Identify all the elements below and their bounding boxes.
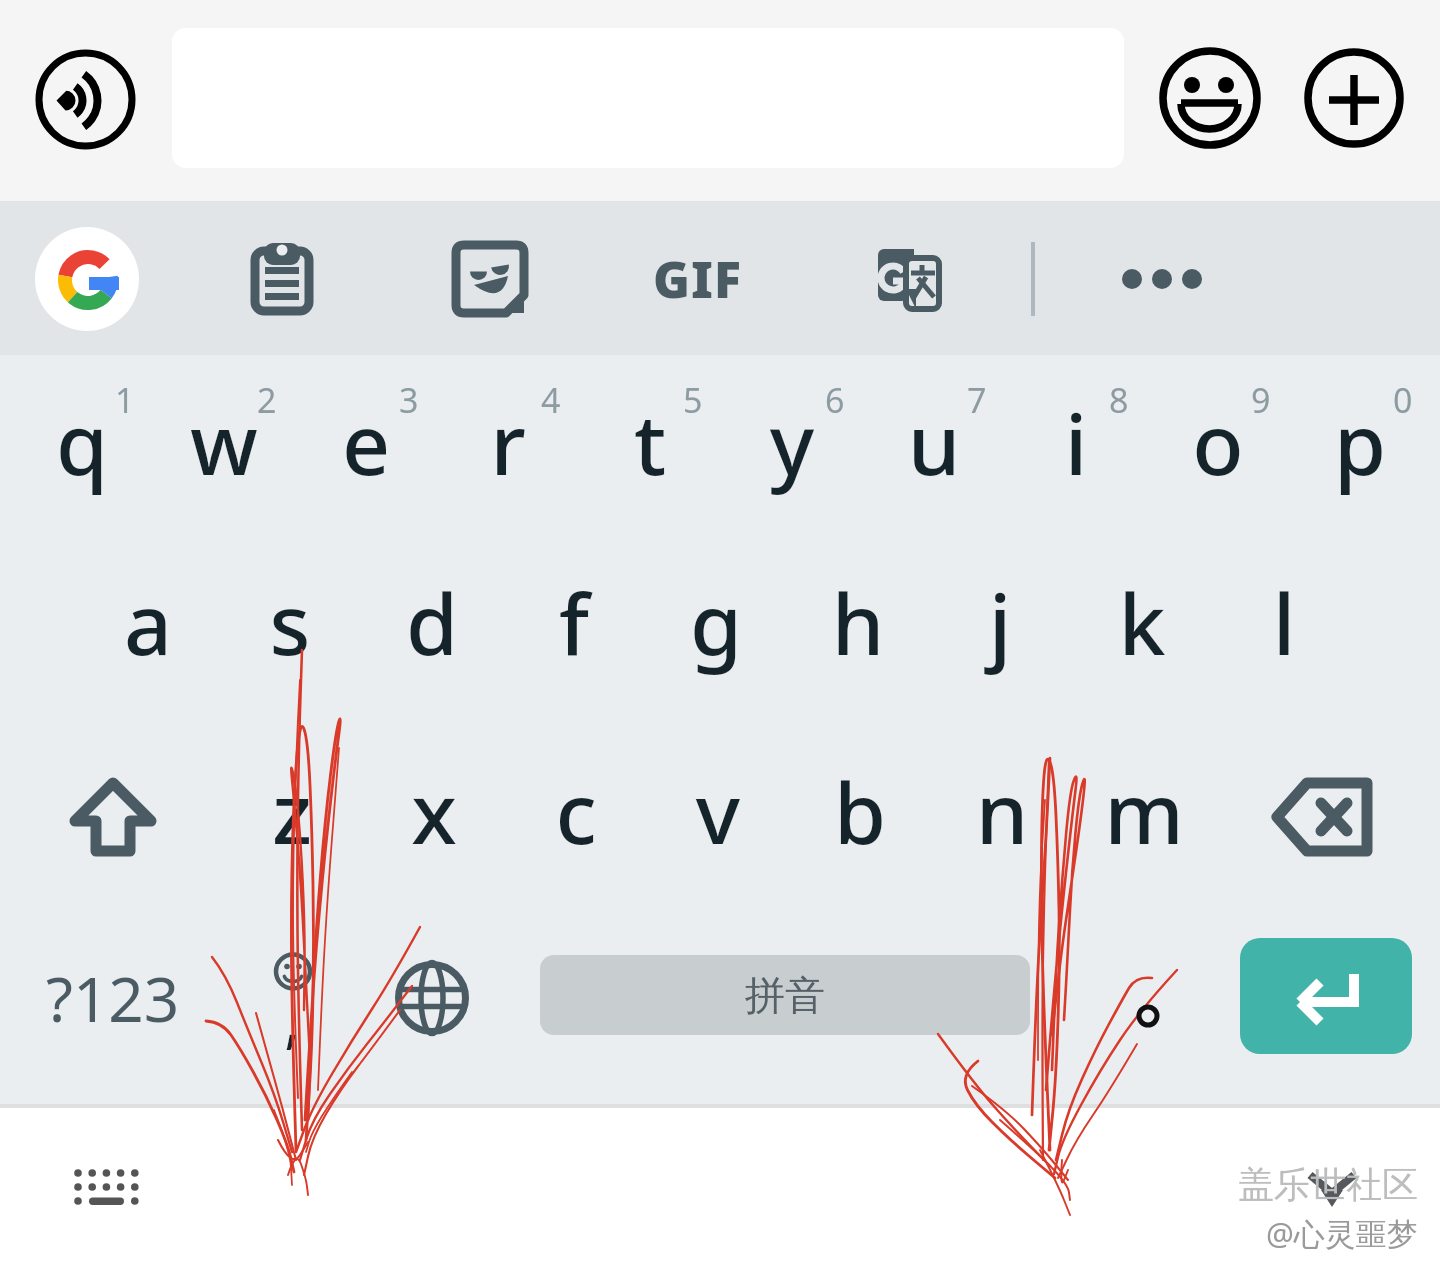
staticText: GIF <box>653 245 742 313</box>
staticText: p <box>1289 385 1431 499</box>
button[interactable]: o <box>1147 355 1289 541</box>
button[interactable]: Switch language <box>362 935 502 1060</box>
staticText: w <box>153 385 295 499</box>
button[interactable]: Emoji <box>1160 48 1260 148</box>
staticText: x <box>363 754 505 868</box>
button[interactable]: p <box>1289 355 1431 541</box>
button[interactable]: Voice input <box>34 48 137 151</box>
button[interactable]: Hide keyboard <box>62 1158 148 1206</box>
staticText: 0 <box>1393 377 1413 423</box>
button[interactable]: Translate <box>858 227 962 331</box>
staticText: c <box>505 754 647 868</box>
button[interactable]: Comma <box>222 935 362 1060</box>
staticText: 2 <box>257 377 277 423</box>
staticText: , <box>284 976 301 1060</box>
staticText: i <box>1005 385 1147 499</box>
button[interactable]: x <box>363 724 505 910</box>
staticText: e <box>295 385 437 499</box>
staticText: 5 <box>683 377 703 423</box>
button[interactable]: ?123 <box>28 935 198 1060</box>
button[interactable]: i <box>1005 355 1147 541</box>
button[interactable]: s <box>219 535 361 721</box>
button[interactable]: m <box>1073 724 1215 910</box>
staticText: h <box>787 565 929 679</box>
staticText: u <box>863 385 1005 499</box>
button[interactable]: Shift <box>40 752 186 882</box>
button[interactable]: u <box>863 355 1005 541</box>
staticText: d <box>361 565 503 679</box>
button[interactable]: q <box>11 355 153 541</box>
staticText: 6 <box>825 377 845 423</box>
button[interactable]: d <box>361 535 503 721</box>
staticText: ?123 <box>46 956 180 1040</box>
button[interactable]: w <box>153 355 295 541</box>
staticText: t <box>579 385 721 499</box>
button[interactable]: n <box>931 724 1073 910</box>
staticText: z <box>221 754 363 868</box>
button[interactable]: Sticker <box>438 227 542 331</box>
button[interactable]: 拼音 <box>540 955 1030 1035</box>
staticText: o <box>1147 385 1289 499</box>
button[interactable]: g <box>645 535 787 721</box>
staticText: q <box>11 385 153 499</box>
staticText: 盖乐世社区 <box>1238 1162 1418 1207</box>
staticText: @心灵噩梦 <box>1266 1212 1418 1254</box>
staticText: 3 <box>399 377 419 423</box>
staticText: 拼音 <box>745 970 825 1020</box>
button[interactable]: f <box>503 535 645 721</box>
button[interactable]: GIF <box>645 227 749 331</box>
staticText: 8 <box>1109 377 1129 423</box>
staticText: m <box>1073 754 1215 868</box>
staticText: k <box>1071 565 1213 679</box>
button[interactable]: Add <box>1304 48 1404 148</box>
button[interactable]: h <box>787 535 929 721</box>
button[interactable]: t <box>579 355 721 541</box>
button[interactable]: Backspace <box>1252 752 1398 882</box>
staticText: 1 <box>115 377 135 423</box>
button[interactable]: c <box>505 724 647 910</box>
button[interactable]: k <box>1071 535 1213 721</box>
staticText: b <box>789 754 931 868</box>
staticText: 9 <box>1251 377 1271 423</box>
button[interactable]: Google <box>35 227 139 331</box>
staticText: 7 <box>967 377 987 423</box>
button[interactable]: r <box>437 355 579 541</box>
staticText: j <box>929 565 1071 679</box>
button[interactable]: z <box>221 724 363 910</box>
staticText: a <box>77 565 219 679</box>
staticText: l <box>1213 565 1355 679</box>
button[interactable]: l <box>1213 535 1355 721</box>
staticText: 4 <box>541 377 561 423</box>
button[interactable]: b <box>789 724 931 910</box>
button[interactable]: More options <box>1110 227 1214 331</box>
button[interactable]: Clipboard <box>230 227 334 331</box>
staticText: y <box>721 385 863 499</box>
button[interactable]: Enter <box>1240 938 1412 1054</box>
button[interactable]: j <box>929 535 1071 721</box>
staticText: g <box>645 565 787 679</box>
staticText: n <box>931 754 1073 868</box>
staticText: f <box>503 565 645 679</box>
button[interactable]: a <box>77 535 219 721</box>
button[interactable]: y <box>721 355 863 541</box>
staticText: v <box>647 754 789 868</box>
button[interactable]: e <box>295 355 437 541</box>
staticText: r <box>437 385 579 499</box>
button[interactable]: v <box>647 724 789 910</box>
staticText: s <box>219 565 361 679</box>
